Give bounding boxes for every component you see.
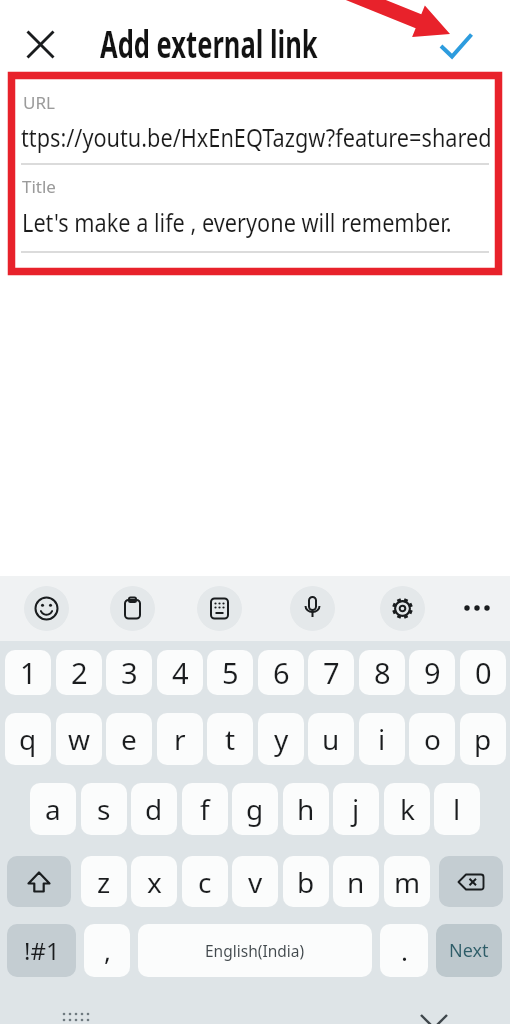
staticText: Add external link — [100, 18, 318, 68]
button[interactable]: 6 — [258, 650, 304, 695]
staticText: o — [424, 720, 441, 758]
button[interactable] — [439, 856, 503, 907]
staticText: 7 — [323, 653, 340, 692]
staticText: 8 — [374, 653, 391, 692]
button[interactable]: w — [56, 713, 102, 765]
button[interactable] — [436, 26, 478, 68]
staticText: g — [246, 790, 264, 828]
staticText: English(India) — [205, 940, 305, 961]
button[interactable]: q — [5, 713, 51, 765]
staticText: 3 — [121, 653, 138, 692]
button[interactable] — [455, 586, 499, 630]
button[interactable]: Next — [436, 924, 502, 977]
button[interactable]: v — [232, 856, 278, 907]
staticText: c — [198, 863, 212, 901]
button[interactable]: a — [30, 783, 76, 835]
button[interactable] — [197, 586, 242, 631]
staticText: !#1 — [24, 934, 60, 967]
staticText: , — [104, 933, 111, 968]
button[interactable]: . — [380, 924, 428, 977]
button[interactable] — [7, 856, 71, 907]
button[interactable]: 3 — [106, 650, 152, 695]
staticText: w — [68, 720, 91, 758]
staticText: Title — [22, 175, 56, 198]
staticText: 0 — [475, 653, 492, 692]
staticText: Let's make a life , everyone will rememb… — [22, 204, 448, 239]
button[interactable]: x — [131, 856, 177, 907]
button[interactable]: o — [409, 713, 455, 765]
staticText: i — [378, 720, 386, 758]
staticText: . — [401, 933, 408, 968]
button[interactable]: r — [157, 713, 203, 765]
staticText: p — [474, 720, 492, 758]
button[interactable]: e — [106, 713, 152, 765]
button[interactable] — [24, 586, 69, 631]
staticText: j — [352, 790, 360, 828]
button[interactable]: p — [460, 713, 506, 765]
button[interactable]: 4 — [157, 650, 203, 695]
button[interactable]: z — [81, 856, 127, 907]
staticText: d — [145, 790, 163, 828]
staticText: e — [121, 720, 137, 758]
button[interactable]: m — [384, 856, 430, 907]
button[interactable]: 8 — [359, 650, 405, 695]
staticText: h — [297, 790, 315, 828]
staticText: y — [274, 720, 289, 758]
button[interactable] — [22, 26, 59, 63]
button[interactable]: c — [182, 856, 228, 907]
button[interactable]: i — [359, 713, 405, 765]
button[interactable]: u — [308, 713, 354, 765]
button[interactable]: g — [232, 783, 278, 835]
staticText: 2 — [71, 653, 88, 692]
button[interactable] — [110, 586, 155, 631]
button[interactable]: 9 — [409, 650, 455, 695]
staticText: b — [297, 863, 315, 901]
button[interactable]: English(India) — [138, 924, 372, 977]
button[interactable]: s — [81, 783, 127, 835]
button[interactable]: 7 — [308, 650, 354, 695]
staticText: Next — [449, 938, 489, 963]
button[interactable]: 0 — [460, 650, 506, 695]
staticText: v — [248, 863, 263, 901]
button[interactable]: !#1 — [7, 924, 76, 977]
button[interactable]: d — [131, 783, 177, 835]
staticText: 5 — [222, 653, 239, 692]
button[interactable]: 2 — [56, 650, 102, 695]
staticText: q — [19, 720, 37, 758]
staticText: x — [147, 863, 162, 901]
button[interactable]: y — [258, 713, 304, 765]
staticText: 9 — [424, 653, 441, 692]
button[interactable]: f — [182, 783, 228, 835]
button[interactable]: 1 — [5, 650, 51, 695]
button[interactable] — [380, 586, 425, 631]
button[interactable]: n — [333, 856, 379, 907]
button[interactable]: k — [384, 783, 430, 835]
staticText: URL — [23, 91, 55, 114]
button[interactable]: j — [333, 783, 379, 835]
staticText: l — [453, 790, 461, 828]
button[interactable]: , — [84, 924, 130, 977]
staticText: s — [97, 790, 111, 828]
button[interactable]: 5 — [207, 650, 253, 695]
staticText: r — [174, 720, 186, 758]
staticText: n — [347, 863, 365, 901]
button[interactable]: l — [434, 783, 480, 835]
staticText: t — [225, 720, 236, 758]
button[interactable] — [290, 586, 335, 631]
staticText: 1 — [20, 653, 37, 692]
staticText: f — [200, 790, 210, 828]
staticText: m — [394, 863, 421, 901]
staticText: a — [45, 790, 61, 828]
button[interactable]: t — [207, 713, 253, 765]
staticText: 4 — [172, 653, 189, 692]
button[interactable]: b — [283, 856, 329, 907]
staticText: k — [400, 790, 415, 828]
staticText: ttps://youtu.be/HxEnEQTazgw?feature=shar… — [21, 119, 447, 154]
button[interactable]: h — [283, 783, 329, 835]
staticText: 6 — [273, 653, 290, 692]
staticText: z — [97, 863, 111, 901]
staticText: u — [322, 720, 340, 758]
